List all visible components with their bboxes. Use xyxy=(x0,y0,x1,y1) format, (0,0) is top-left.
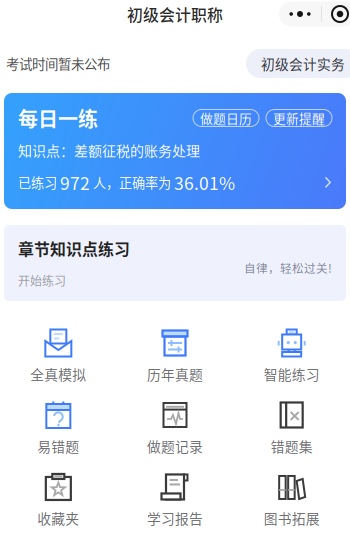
staticText: 已练习 xyxy=(18,173,60,192)
staticText: 智能练习 xyxy=(264,364,320,384)
staticText: 自律，轻松过关! xyxy=(244,259,332,276)
button[interactable]: 图书拓展 xyxy=(233,472,350,528)
button[interactable]: 做题日历 xyxy=(193,109,259,126)
button[interactable]: 学习报告 xyxy=(117,472,233,528)
button[interactable]: Mini program menu xyxy=(279,1,350,26)
button[interactable]: 做题记录 xyxy=(117,400,233,456)
staticText: 易错题 xyxy=(37,436,79,456)
staticText: 人，正确率为 xyxy=(90,173,174,192)
button[interactable]: 收藏夹 xyxy=(0,472,117,528)
button[interactable]: 更新提醒 xyxy=(266,109,332,126)
staticText: 收藏夹 xyxy=(37,508,79,528)
staticText: 开始练习 xyxy=(18,272,66,289)
staticText: 做题日历 xyxy=(200,109,252,127)
button[interactable]: 章节知识点练习 xyxy=(4,225,346,301)
button[interactable]: 全真模拟 xyxy=(0,328,117,384)
staticText: 全真模拟 xyxy=(30,364,86,384)
button[interactable]: 初级会计实务 xyxy=(246,49,350,78)
staticText: 图书拓展 xyxy=(264,508,320,528)
button[interactable]: 智能练习 xyxy=(233,328,350,384)
staticText: 36.01% xyxy=(174,170,235,195)
staticText: 考试时间暂未公布 xyxy=(6,54,110,73)
staticText: 知识点：差额征税的账务处理 xyxy=(18,140,200,160)
staticText: 初级会计实务 xyxy=(261,54,345,73)
staticText: 学习报告 xyxy=(147,508,203,528)
staticText: 错题集 xyxy=(271,436,313,456)
staticText: 972 xyxy=(60,170,90,195)
button[interactable]: 错题集 xyxy=(233,400,350,456)
staticText: 更新提醒 xyxy=(273,109,325,127)
staticText: 做题记录 xyxy=(147,436,203,456)
button[interactable]: 易错题 xyxy=(0,400,117,456)
staticText: 每日一练 xyxy=(18,103,98,132)
staticText: 章节知识点练习 xyxy=(18,237,130,260)
button[interactable]: 每日一练 xyxy=(4,93,346,209)
staticText: 历年真题 xyxy=(147,364,203,384)
staticText: 初级会计职称 xyxy=(127,2,223,25)
button[interactable]: 历年真题 xyxy=(117,328,233,384)
